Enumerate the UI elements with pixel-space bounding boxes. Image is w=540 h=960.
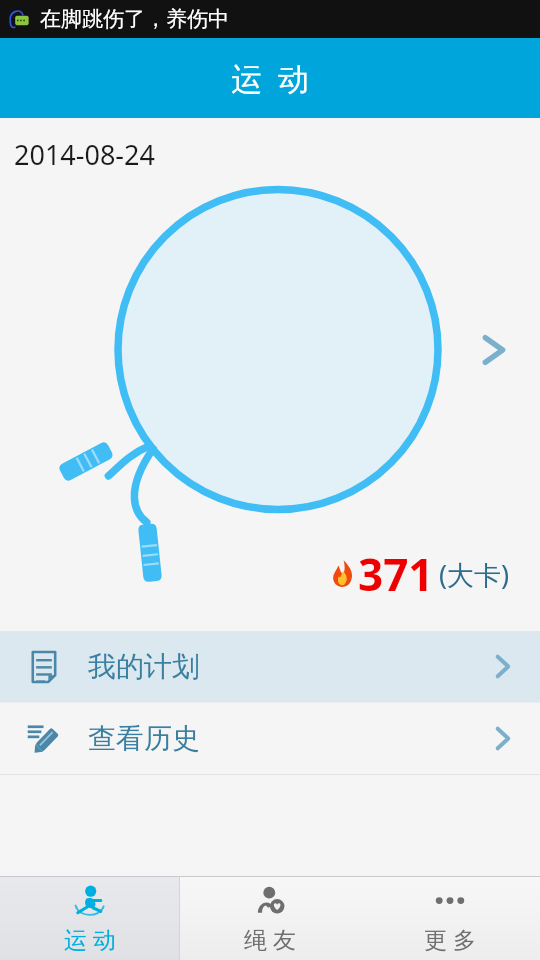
staticText: 运 动	[231, 57, 310, 99]
button[interactable]: 更 多	[360, 877, 540, 960]
staticText: 运 动	[64, 923, 116, 954]
staticText: 查看历史	[88, 721, 200, 756]
button[interactable]: 运 动	[0, 877, 179, 960]
button[interactable]: 绳 友	[180, 877, 360, 960]
staticText: 371	[358, 544, 434, 604]
staticText: 更 多	[424, 923, 476, 954]
staticText: 2014-08-24	[14, 136, 155, 173]
button[interactable]: 我的计划	[0, 631, 540, 702]
staticText: 绳 友	[244, 923, 296, 954]
staticText: 在脚跳伤了，养伤中	[40, 6, 229, 32]
staticText: 我的计划	[88, 649, 200, 684]
button[interactable]: Next day	[472, 328, 516, 372]
button[interactable]: 查看历史	[0, 703, 540, 774]
staticText: (大卡)	[439, 556, 510, 593]
